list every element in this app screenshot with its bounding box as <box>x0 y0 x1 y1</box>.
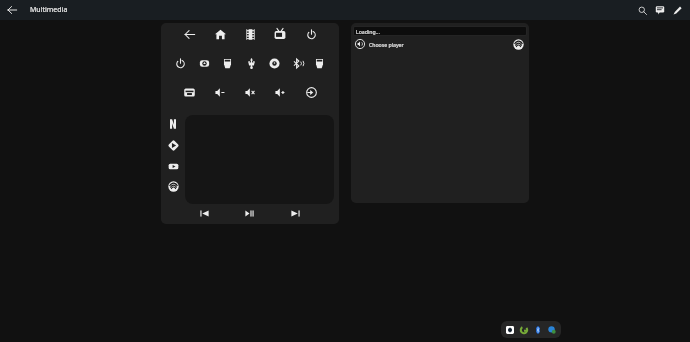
button[interactable]: Browser <box>545 323 559 337</box>
button[interactable]: TV <box>270 24 290 44</box>
button[interactable]: HDMI 1 <box>217 53 237 73</box>
button[interactable]: Play or pause <box>239 203 259 223</box>
button[interactable]: Search <box>632 0 652 20</box>
staticText: Loading... <box>356 28 380 35</box>
button[interactable]: Input <box>301 82 321 102</box>
button[interactable]: Power <box>170 53 190 73</box>
button[interactable]: Bluetooth <box>531 323 545 337</box>
button[interactable]: Composite input <box>194 53 214 73</box>
button[interactable]: Choose player <box>353 37 527 51</box>
staticText: Choose player <box>369 41 404 48</box>
button[interactable]: Edit <box>667 0 687 20</box>
button[interactable]: Comments <box>650 0 670 20</box>
button[interactable]: Volume down <box>210 82 230 102</box>
button[interactable]: HDMI 2 <box>309 53 329 73</box>
button[interactable]: Previous <box>194 203 214 223</box>
button[interactable]: Back <box>4 2 20 18</box>
button[interactable]: Power <box>301 24 321 44</box>
button[interactable]: Launcher app <box>517 323 531 337</box>
button[interactable]: Bluetooth <box>287 53 307 73</box>
button[interactable]: Play Movies <box>163 135 183 155</box>
button[interactable]: Guide <box>240 24 260 44</box>
staticText: Multimedia <box>30 5 68 15</box>
button[interactable]: Spotify <box>163 176 183 196</box>
button[interactable]: YouTube <box>163 156 183 176</box>
button[interactable]: Netflix <box>163 114 183 134</box>
button[interactable]: Disc <box>264 53 284 73</box>
button[interactable]: Mute <box>240 82 260 102</box>
button[interactable]: Next <box>285 203 305 223</box>
button[interactable]: Back <box>179 24 199 44</box>
button[interactable]: Home <box>210 24 230 44</box>
button[interactable]: Settings app <box>503 323 517 337</box>
button[interactable]: USB <box>241 53 261 73</box>
button[interactable]: Volume up <box>270 82 290 102</box>
button[interactable]: Subtitles <box>179 82 199 102</box>
